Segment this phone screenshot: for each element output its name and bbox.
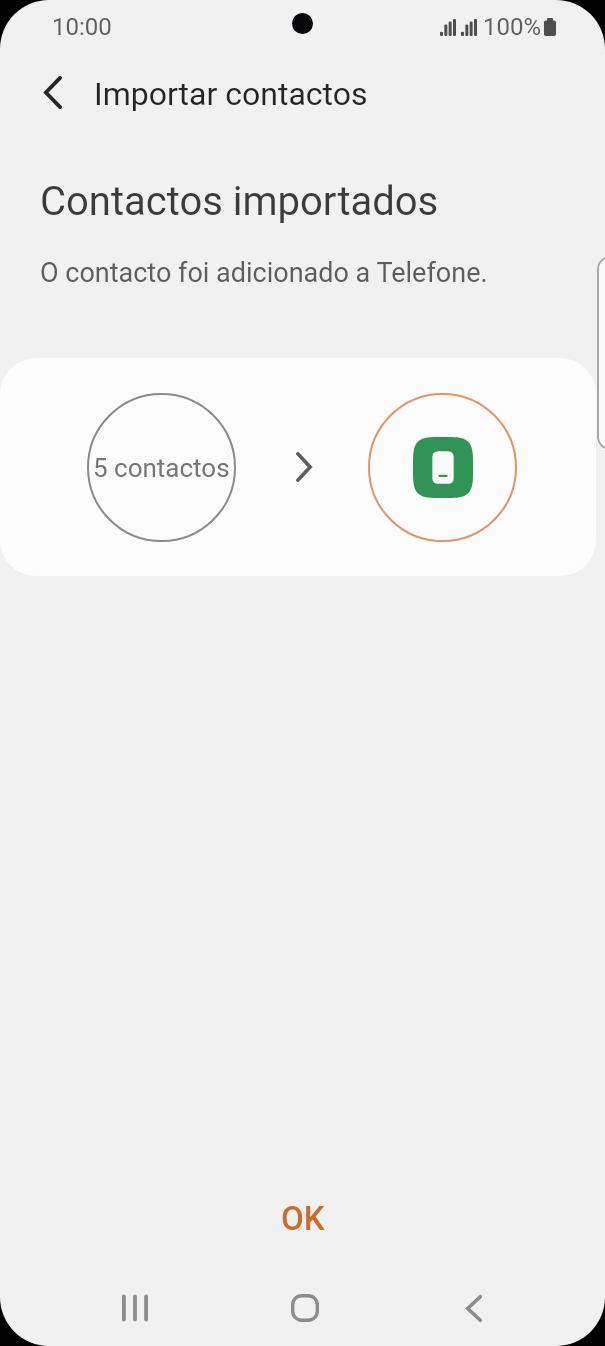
staticText: 10:00 (52, 13, 112, 41)
staticText: Contactos importados (40, 178, 439, 225)
button[interactable]: Recentes (99, 1272, 171, 1344)
button[interactable]: Voltar (27, 66, 79, 118)
button[interactable]: Telefone (368, 393, 517, 542)
button[interactable]: Voltar (438, 1272, 510, 1344)
button[interactable]: Seguinte (597, 256, 605, 450)
button[interactable]: OK (0, 1180, 605, 1256)
button[interactable]: 5 contactos (87, 393, 236, 542)
button[interactable]: Seguinte (286, 445, 322, 489)
staticText: 100% (483, 13, 542, 41)
staticText: O contacto foi adicionado a Telefone. (40, 257, 488, 289)
staticText: 5 contactos (93, 453, 230, 483)
staticText: OK (281, 1199, 325, 1238)
staticText: Importar contactos (94, 75, 368, 113)
button[interactable]: Início (269, 1272, 341, 1344)
